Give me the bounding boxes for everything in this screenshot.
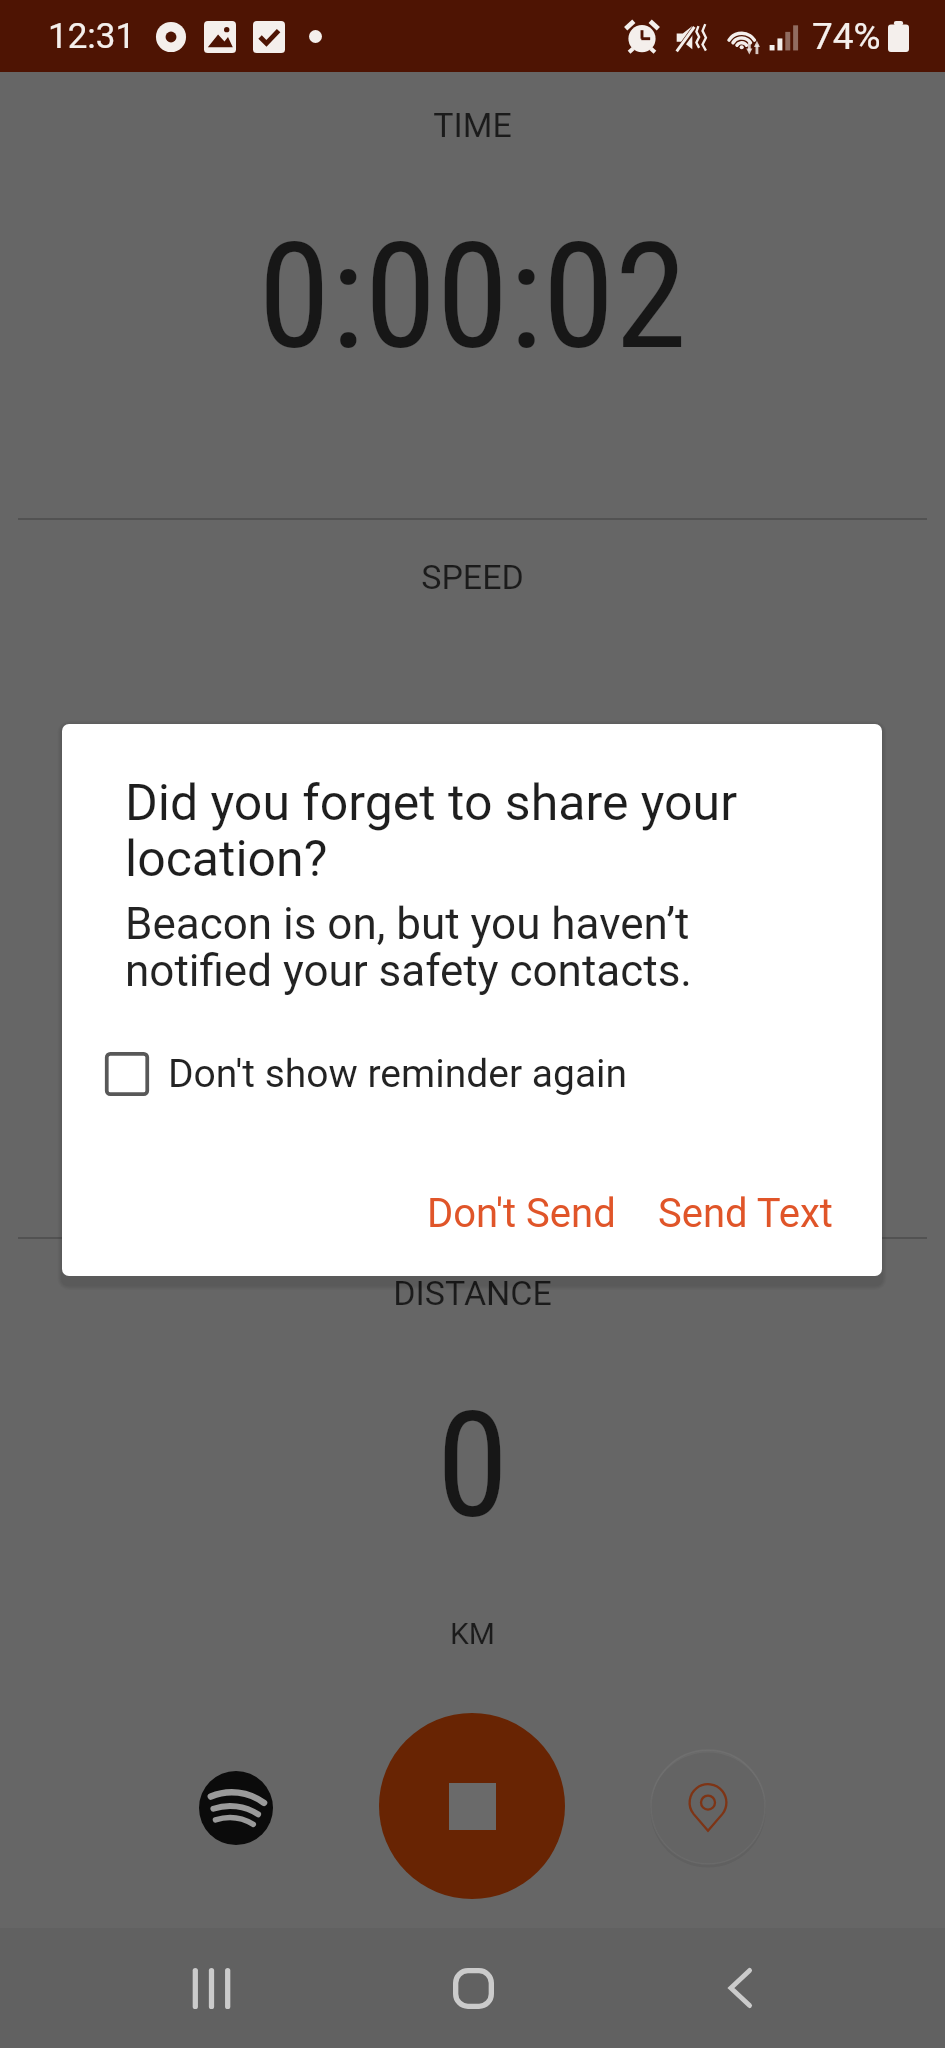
- button[interactable]: Back: [695, 1943, 785, 2033]
- button[interactable]: Spotify: [199, 1771, 273, 1845]
- staticText: 0:00:02: [0, 212, 945, 383]
- button[interactable]: Home: [428, 1943, 518, 2033]
- staticText: DISTANCE: [0, 1273, 945, 1313]
- staticText: 74%: [812, 15, 881, 58]
- button[interactable]: Don't Send: [410, 1176, 633, 1251]
- staticText: SPEED: [0, 557, 945, 597]
- button[interactable]: Send Text: [641, 1176, 850, 1251]
- staticText: KM: [0, 1616, 945, 1651]
- staticText: Did you forget to share your location?: [125, 774, 825, 888]
- button[interactable]: Stop workout: [379, 1713, 565, 1899]
- button[interactable]: Recent apps: [166, 1943, 256, 2033]
- staticText: 0: [0, 1381, 945, 1552]
- staticText: TIME: [0, 105, 945, 145]
- staticText: Don't Send: [427, 1190, 616, 1237]
- staticText: Don't show reminder again: [168, 1051, 628, 1097]
- button[interactable]: Share location: [648, 1747, 768, 1867]
- staticText: Send Text: [658, 1190, 833, 1237]
- button[interactable]: Don't show reminder again: [105, 1044, 839, 1104]
- staticText: 12:31: [48, 16, 136, 57]
- staticText: Beacon is on, but you haven’t notified y…: [125, 898, 825, 997]
